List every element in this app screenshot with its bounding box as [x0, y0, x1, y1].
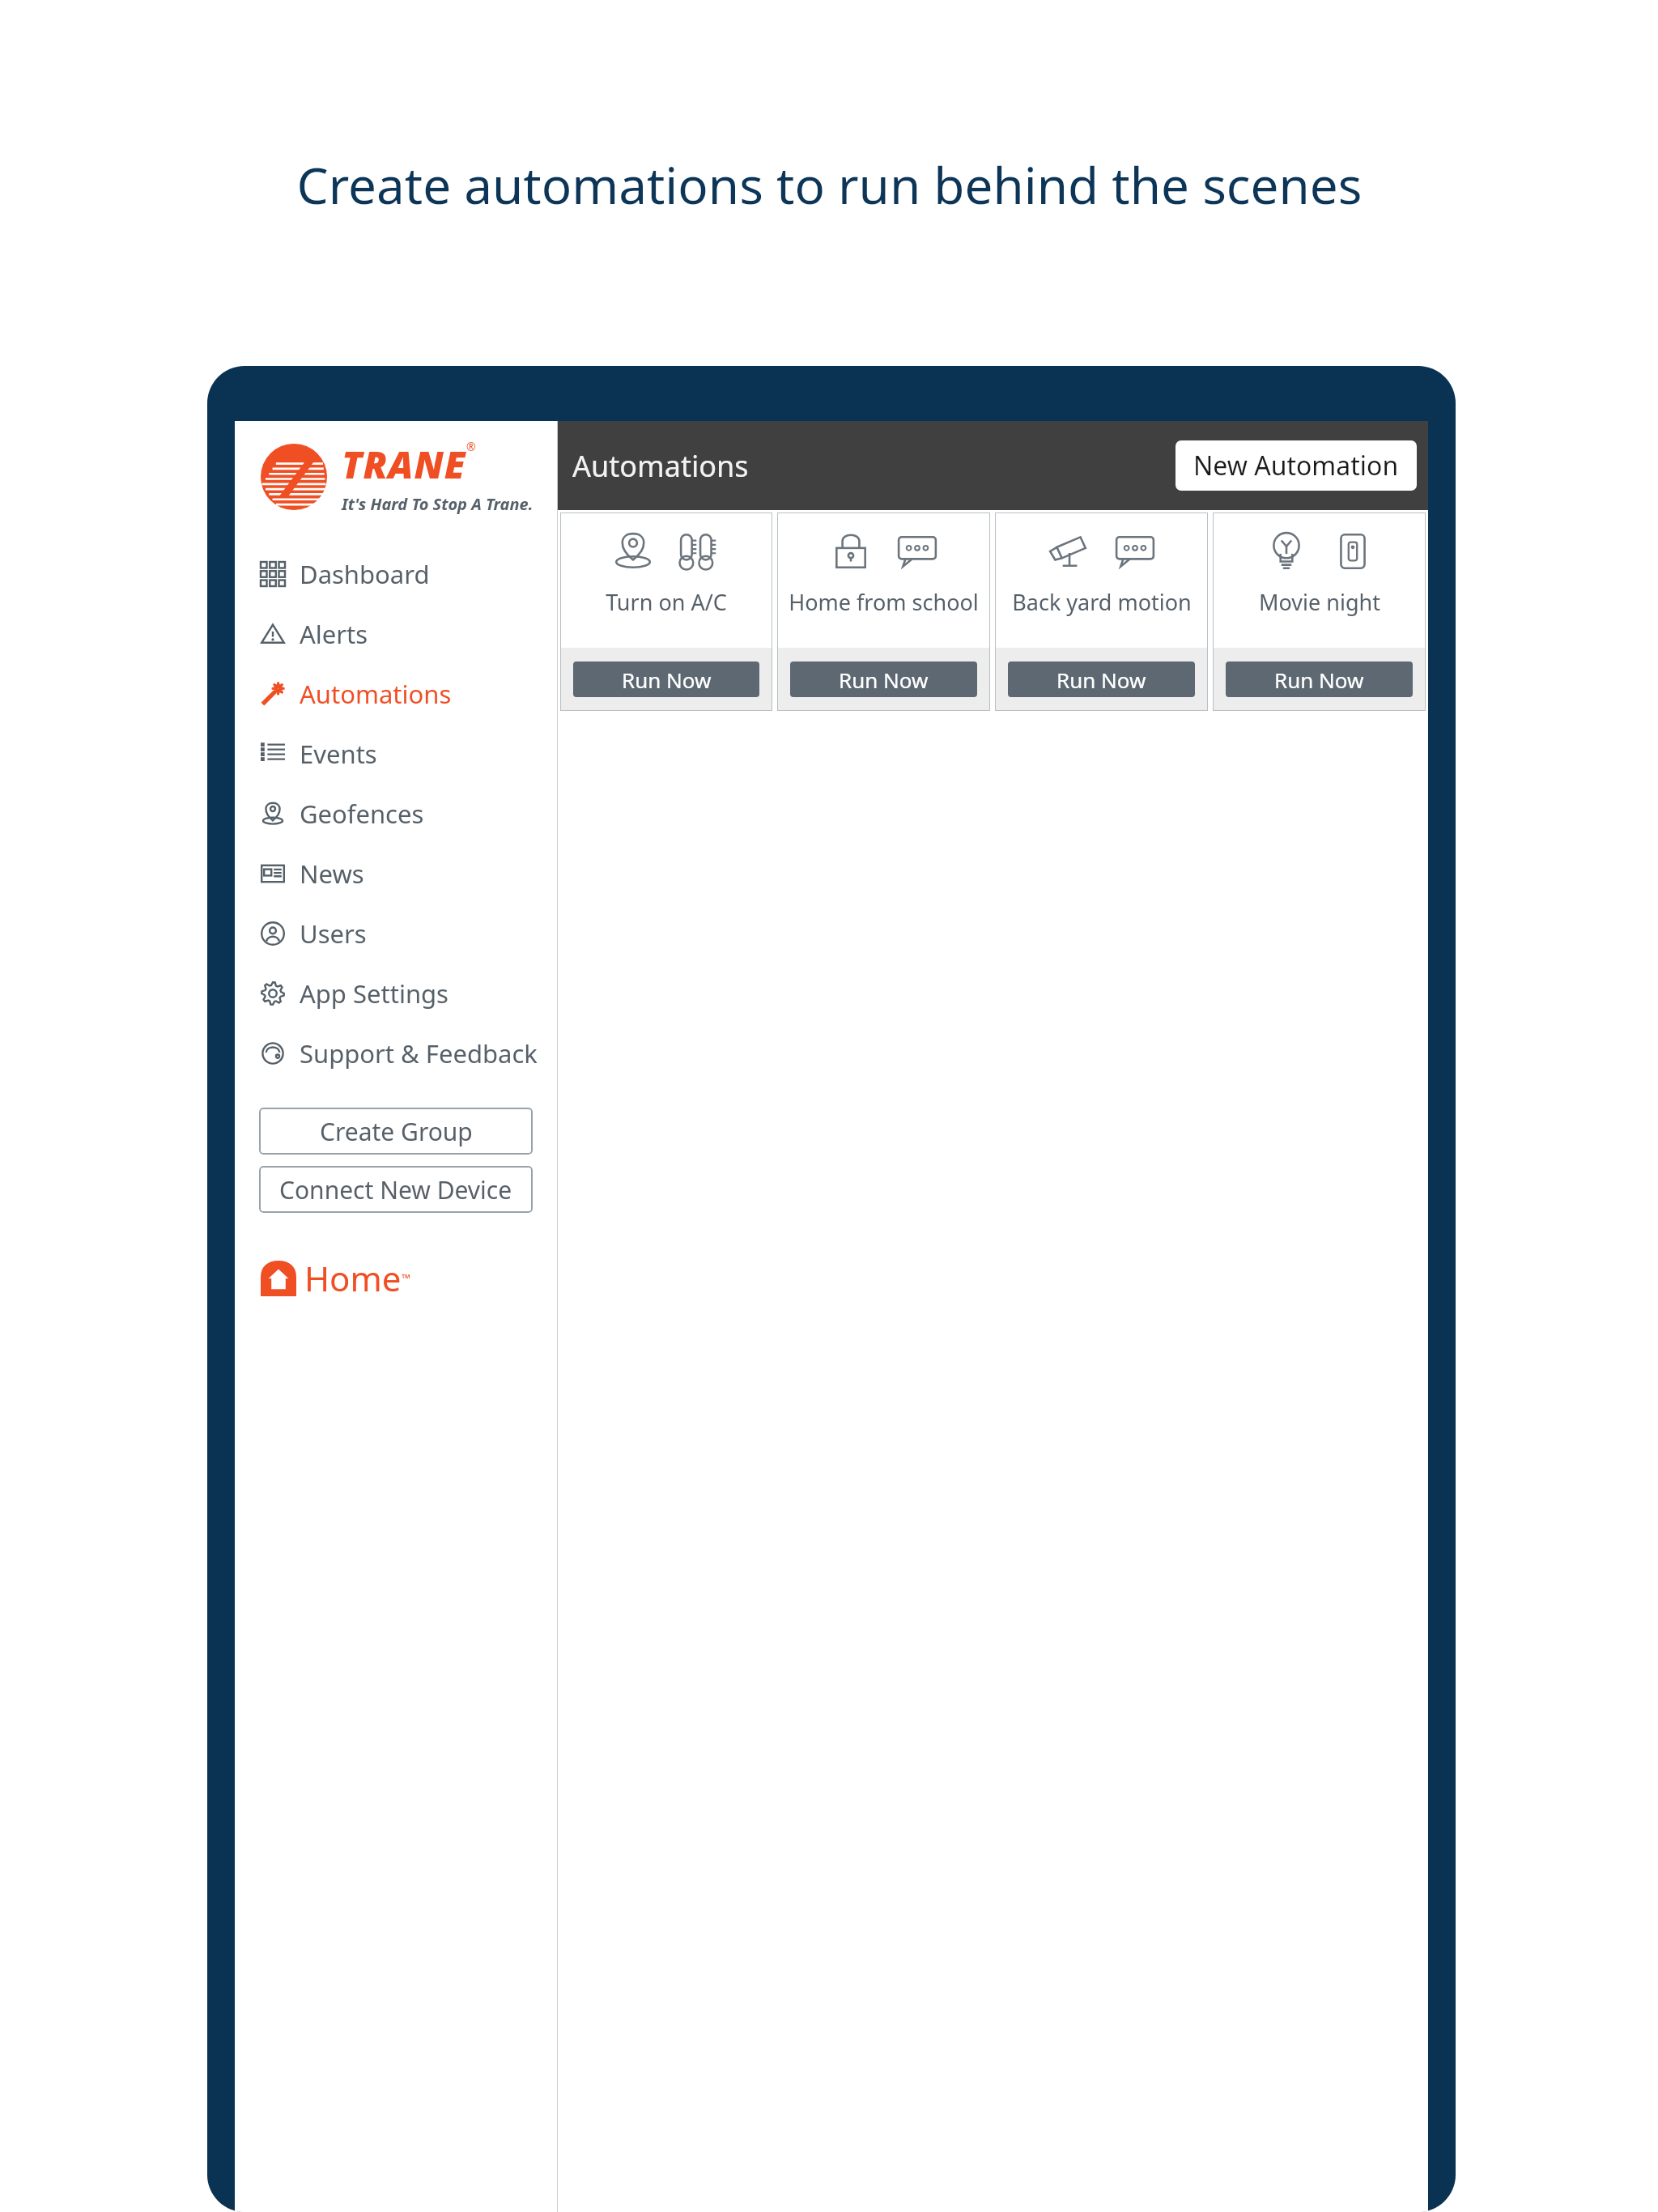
button[interactable]: Dashboard — [235, 544, 557, 604]
button[interactable]: Run Now — [573, 661, 759, 697]
staticText: Create automations to run behind the sce… — [296, 151, 1363, 219]
button[interactable]: Alerts — [235, 604, 557, 664]
staticText: Dashboard — [300, 557, 430, 591]
staticText: Events — [300, 737, 377, 771]
button[interactable]: Home — [261, 1255, 410, 1301]
staticText: Users — [300, 917, 367, 951]
button[interactable]: Users — [235, 904, 557, 963]
staticText: Support & Feedback — [300, 1036, 538, 1070]
staticText: ™ — [402, 1270, 410, 1286]
staticText: ® — [466, 439, 476, 454]
button[interactable]: Geofences — [235, 784, 557, 844]
button[interactable]: Run Now — [790, 661, 977, 697]
button[interactable]: Connect New Device — [259, 1166, 533, 1213]
button[interactable]: App Settings — [235, 963, 557, 1023]
staticText: Run Now — [839, 666, 929, 694]
staticText: Geofences — [300, 797, 424, 831]
button[interactable]: Turn on A/C — [560, 513, 772, 711]
staticText: New Automation — [1193, 448, 1399, 483]
staticText: App Settings — [300, 976, 449, 1010]
staticText: Run Now — [1056, 666, 1146, 694]
staticText: Run Now — [622, 666, 712, 694]
button[interactable]: Events — [235, 724, 557, 784]
staticText: News — [300, 857, 364, 891]
button[interactable]: Automations — [235, 664, 557, 724]
staticText: Automations — [572, 446, 749, 486]
button[interactable]: Run Now — [1008, 661, 1195, 697]
staticText: TRANE — [342, 439, 466, 490]
staticText: Home — [304, 1255, 402, 1301]
button[interactable]: Support & Feedback — [235, 1023, 557, 1083]
staticText: Connect New Device — [279, 1173, 512, 1206]
staticText: Run Now — [1274, 666, 1364, 694]
staticText: Automations — [300, 677, 452, 711]
button[interactable]: Create Group — [259, 1108, 533, 1155]
button[interactable]: Home from school — [777, 513, 990, 711]
staticText: It's Hard To Stop A Trane. — [342, 493, 534, 515]
staticText: Home from school — [789, 587, 979, 617]
staticText: Back yard motion — [1012, 587, 1192, 617]
staticText: Turn on A/C — [606, 587, 727, 617]
button[interactable]: News — [235, 844, 557, 904]
button[interactable]: Back yard motion — [995, 513, 1208, 711]
staticText: Create Group — [320, 1115, 473, 1148]
button[interactable]: Movie night — [1213, 513, 1426, 711]
button[interactable]: New Automation — [1175, 440, 1417, 491]
button[interactable]: Run Now — [1226, 661, 1413, 697]
staticText: Alerts — [300, 617, 368, 651]
staticText: Movie night — [1259, 587, 1380, 617]
